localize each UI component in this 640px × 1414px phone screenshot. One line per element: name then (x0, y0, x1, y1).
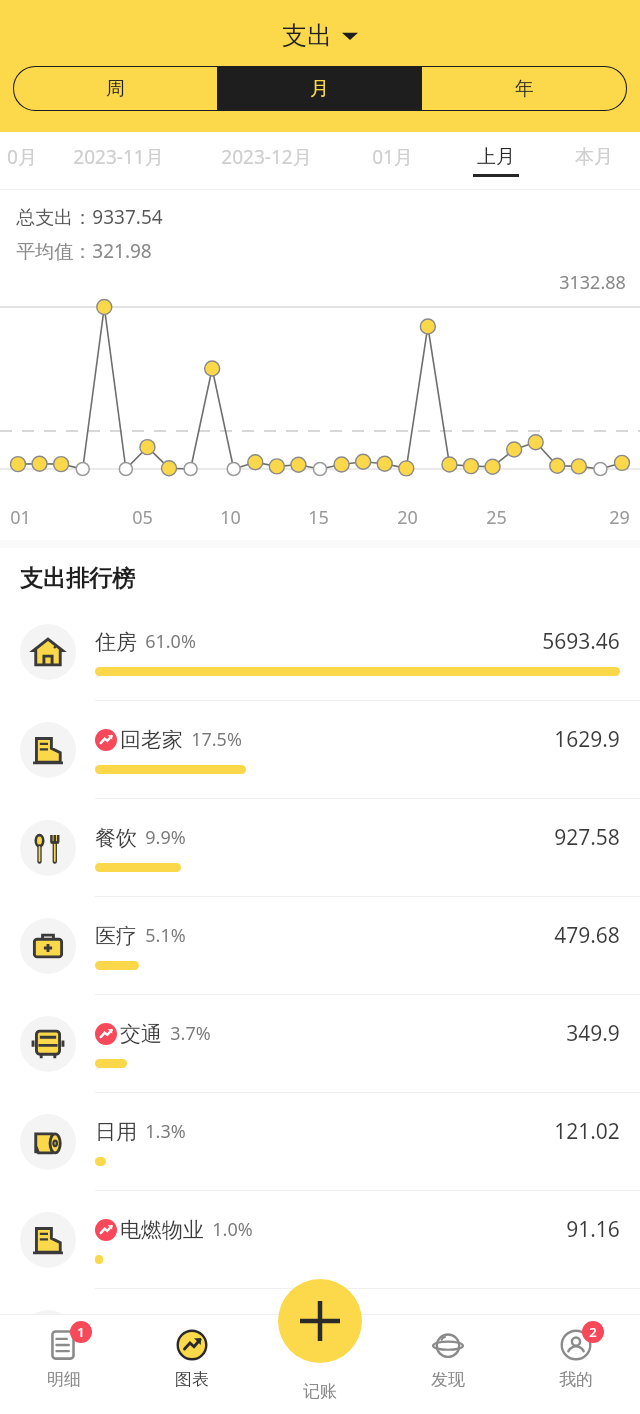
button[interactable]: 医疗 (0, 897, 640, 994)
button[interactable]: 2023-11月 (44, 132, 192, 190)
button[interactable]: 回老家 (0, 701, 640, 798)
staticText: 支出 (282, 20, 332, 51)
staticText: 5.1% (145, 923, 186, 948)
staticText: 121.02 (554, 1117, 620, 1146)
staticText: 上月 (477, 145, 515, 169)
button[interactable]: 01月 (340, 132, 444, 190)
staticText: 91.16 (566, 1215, 620, 1244)
staticText: 我的 (559, 1369, 593, 1390)
staticText: 2 (589, 1323, 597, 1341)
staticText: 回老家 (120, 727, 183, 753)
button[interactable]: 记账 (278, 1279, 362, 1363)
staticText: 2023-11月 (73, 144, 164, 170)
staticText: 0月 (7, 144, 37, 170)
staticText: 住房 (95, 629, 137, 655)
staticText: 01 (10, 505, 31, 530)
staticText: 明细 (47, 1369, 81, 1390)
button[interactable]: 交通 (0, 995, 640, 1092)
staticText: 2023-12月 (221, 144, 312, 170)
button[interactable]: 电燃物业 (0, 1191, 640, 1288)
staticText: 01月 (372, 144, 413, 170)
staticText: 29 (609, 505, 630, 530)
staticText: 1.3% (145, 1119, 186, 1144)
staticText: 15 (308, 505, 329, 530)
staticText: 日用 (95, 1119, 137, 1145)
staticText: 图表 (175, 1369, 209, 1390)
staticText: 927.58 (554, 823, 620, 852)
staticText: 10 (220, 505, 241, 530)
staticText: 3132.88 (559, 270, 626, 295)
staticText: 17.5% (191, 727, 242, 752)
staticText: 交通 (120, 1021, 162, 1047)
button[interactable]: 周 (13, 66, 217, 111)
button[interactable]: 图表 (128, 1314, 256, 1414)
staticText: 20 (397, 505, 418, 530)
staticText: 1 (77, 1323, 85, 1341)
staticText: 年 (515, 77, 534, 101)
staticText: 月 (310, 77, 329, 101)
button[interactable]: 支出 (274, 18, 366, 53)
button[interactable]: 0月 (0, 132, 44, 190)
staticText: 餐饮 (95, 825, 137, 851)
button[interactable]: 月 (217, 66, 422, 111)
staticText: 本月 (575, 145, 613, 169)
staticText: 61.0% (145, 629, 196, 654)
staticText: 9.9% (145, 825, 186, 850)
staticText: 05 (132, 505, 153, 530)
button[interactable]: 本月 (548, 132, 640, 190)
staticText: 3.7% (170, 1021, 211, 1046)
staticText: 平均值：321.98 (16, 238, 152, 264)
button[interactable]: 年 (422, 66, 627, 111)
button[interactable]: 餐饮 (0, 799, 640, 896)
staticText: 44.84 (566, 1313, 620, 1342)
staticText: 349.9 (566, 1019, 620, 1048)
button[interactable]: 1 (0, 1314, 128, 1414)
staticText: 发现 (431, 1369, 465, 1390)
staticText: 1629.9 (554, 725, 620, 754)
staticText: 5693.46 (542, 627, 620, 656)
staticText: 医疗 (95, 923, 137, 949)
button[interactable]: 住房 (0, 603, 640, 700)
button[interactable]: 2 (512, 1314, 640, 1414)
button[interactable]: 通讯 (0, 1289, 640, 1386)
button[interactable]: 记账 (256, 1314, 384, 1414)
staticText: 1.0% (212, 1217, 253, 1242)
button[interactable]: 2023-12月 (192, 132, 340, 190)
staticText: 电燃物业 (120, 1217, 204, 1243)
button[interactable]: 上月 (444, 132, 548, 190)
staticText: 周 (106, 77, 125, 101)
staticText: 479.68 (554, 921, 620, 950)
button[interactable]: 发现 (384, 1314, 512, 1414)
staticText: 总支出：9337.54 (16, 204, 163, 230)
staticText: 支出排行榜 (20, 564, 135, 593)
staticText: 0.5% (170, 1315, 211, 1340)
staticText: 记账 (303, 1381, 337, 1402)
staticText: 25 (486, 505, 507, 530)
button[interactable]: 日用 (0, 1093, 640, 1190)
